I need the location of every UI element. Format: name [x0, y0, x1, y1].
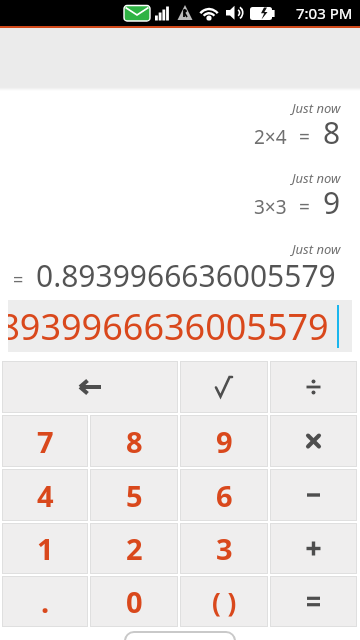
button[interactable]: ( )	[180, 576, 268, 627]
staticText: =	[299, 124, 310, 150]
staticText: Just now	[292, 99, 341, 117]
button[interactable]	[270, 576, 357, 627]
staticText: 9	[216, 422, 233, 461]
staticText: 2	[126, 529, 143, 568]
staticText: 0	[126, 582, 143, 621]
staticText: 3×3	[254, 194, 287, 220]
staticText: Just now	[292, 240, 341, 258]
staticText: .	[41, 582, 50, 621]
button[interactable]: 1	[2, 523, 88, 574]
staticText: 0.8939966636005579	[8, 302, 313, 351]
staticText: Just now	[292, 169, 341, 187]
staticText: 3	[216, 529, 233, 568]
staticText: ( )	[212, 584, 237, 619]
button[interactable]	[180, 361, 268, 413]
button[interactable]	[270, 523, 357, 574]
button[interactable]: 2	[90, 523, 178, 574]
button[interactable]	[270, 415, 357, 467]
button[interactable]: 6	[180, 469, 268, 521]
staticText: =	[13, 267, 24, 292]
staticText: 2×4	[254, 124, 287, 150]
staticText: 7	[37, 422, 54, 461]
button[interactable]: 5	[90, 469, 178, 521]
button[interactable]: 9	[180, 415, 268, 467]
button[interactable]: 7	[2, 415, 88, 467]
staticText: 6	[216, 476, 233, 515]
staticText: 4	[37, 476, 54, 515]
staticText: =	[299, 194, 310, 220]
staticText: 1	[37, 529, 54, 568]
button[interactable]	[270, 469, 357, 521]
button[interactable]: 0	[90, 576, 178, 627]
button[interactable]: 3	[180, 523, 268, 574]
button[interactable]: 0.8939966636005579	[8, 300, 352, 352]
staticText: 5	[126, 476, 143, 515]
button[interactable]	[270, 361, 357, 413]
button[interactable]: .	[2, 576, 88, 627]
button[interactable]	[2, 361, 178, 413]
staticText: 0.8939966636005579	[36, 255, 336, 296]
staticText: 9	[323, 182, 341, 223]
staticText: 7:03 PM	[296, 3, 353, 23]
button[interactable]: 4	[2, 469, 88, 521]
button[interactable]: 8	[90, 415, 178, 467]
staticText: 8	[323, 112, 341, 153]
staticText: 8	[126, 422, 143, 461]
